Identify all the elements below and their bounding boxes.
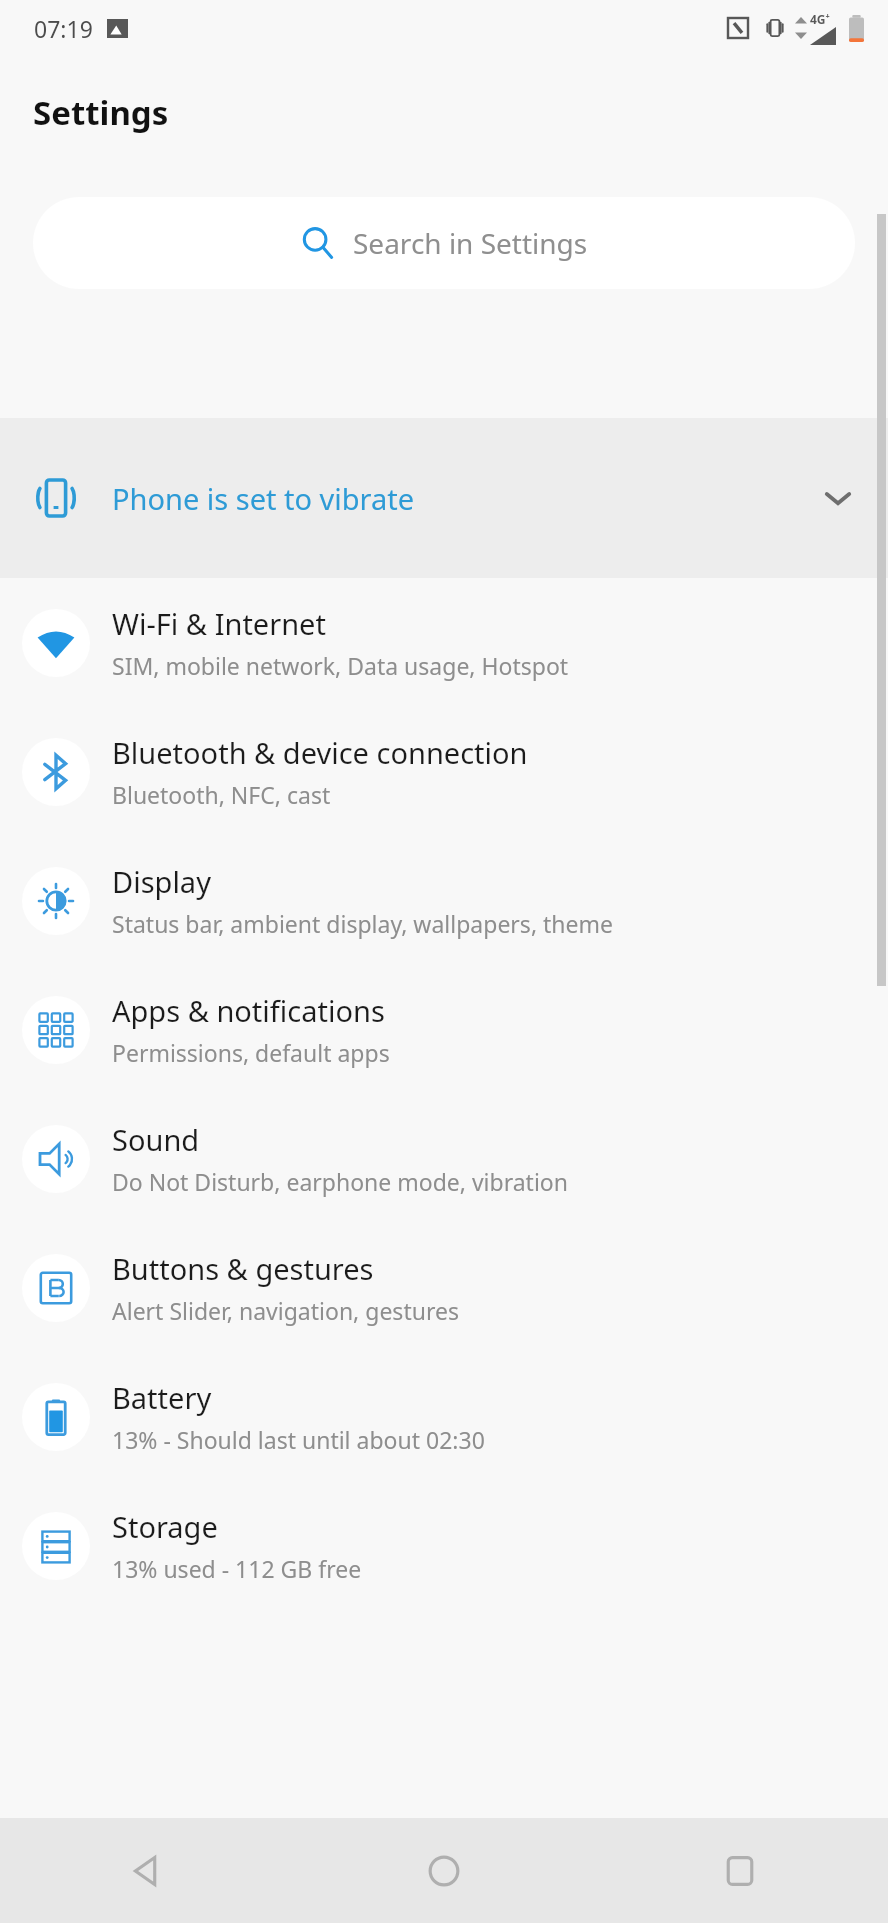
staticText: Alert Slider, navigation, gestures (112, 1295, 459, 1326)
staticText: Status bar, ambient display, wallpapers,… (112, 908, 613, 939)
button[interactable]: Buttons & gestures (0, 1223, 888, 1352)
button[interactable]: Apps & notifications (0, 965, 888, 1094)
button[interactable]: Sound (0, 1094, 888, 1223)
staticText: 13% - Should last until about 02:30 (112, 1424, 485, 1455)
staticText: Wi-Fi & Internet (112, 604, 326, 643)
button[interactable]: Storage (0, 1481, 888, 1610)
staticText: Apps & notifications (112, 991, 385, 1030)
staticText: Phone is set to vibrate (112, 479, 415, 518)
button[interactable]: Display (0, 836, 888, 965)
staticText: Storage (112, 1507, 218, 1546)
staticText: 07:19 (34, 13, 93, 44)
button[interactable]: Home (296, 1818, 592, 1923)
staticText: Sound (112, 1120, 200, 1159)
button[interactable]: Phone is set to vibrate (0, 418, 888, 578)
button[interactable]: Recent apps (592, 1818, 888, 1923)
button[interactable]: Search in Settings (33, 197, 855, 289)
staticText: SIM, mobile network, Data usage, Hotspot (112, 650, 569, 681)
button[interactable]: Bluetooth & device connection (0, 707, 888, 836)
staticText: 13% used - 112 GB free (112, 1553, 362, 1584)
staticText: Do Not Disturb, earphone mode, vibration (112, 1166, 568, 1197)
staticText: Settings (33, 90, 169, 135)
staticText: Bluetooth, NFC, cast (112, 779, 331, 810)
staticText: Search in Settings (353, 224, 588, 262)
staticText: Bluetooth & device connection (112, 733, 528, 772)
button[interactable]: Battery (0, 1352, 888, 1481)
button[interactable]: Wi-Fi & Internet (0, 578, 888, 707)
staticText: Buttons & gestures (112, 1249, 374, 1288)
staticText: Permissions, default apps (112, 1037, 390, 1068)
staticText: Display (112, 862, 211, 901)
staticText: Battery (112, 1378, 212, 1417)
button[interactable]: Back (0, 1818, 296, 1923)
staticText: 4G⁺ (810, 11, 830, 27)
